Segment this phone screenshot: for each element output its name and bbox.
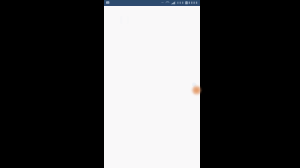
button[interactable]: Page content — [104, 6, 200, 168]
button[interactable]: Status bar — [104, 0, 200, 6]
